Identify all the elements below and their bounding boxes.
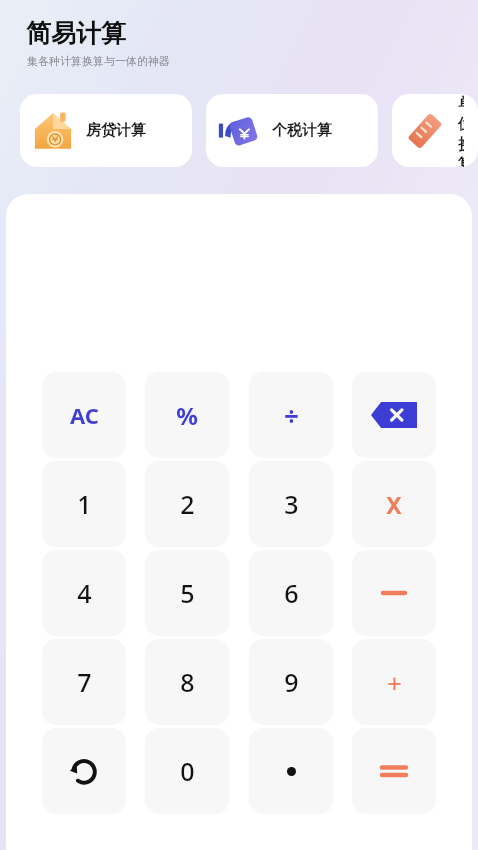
staticText: 单位换算 <box>458 94 464 167</box>
button[interactable]: AC <box>42 372 126 458</box>
button[interactable]: 6 <box>249 550 333 636</box>
staticText: 房贷计算 <box>86 121 146 140</box>
button[interactable]: Decimal point <box>249 728 333 814</box>
button[interactable]: 房贷计算 <box>20 94 192 167</box>
button[interactable]: 1 <box>42 461 126 547</box>
button[interactable]: 单位换算 <box>392 94 478 167</box>
button[interactable]: 个税计算 <box>206 94 378 167</box>
button[interactable]: ÷ <box>249 372 333 458</box>
button[interactable]: 7 <box>42 639 126 725</box>
button[interactable]: X <box>352 461 436 547</box>
staticText: 1 <box>77 487 92 521</box>
staticText: 0 <box>180 754 195 788</box>
staticText: 4 <box>77 576 92 610</box>
button[interactable]: 4 <box>42 550 126 636</box>
button[interactable]: 3 <box>249 461 333 547</box>
staticText: 9 <box>284 665 299 699</box>
staticText: % <box>176 399 198 432</box>
staticText: + <box>387 665 402 700</box>
staticText: AC <box>70 400 99 430</box>
staticText: X <box>386 489 402 520</box>
staticText: 6 <box>284 576 299 610</box>
staticText: 5 <box>180 576 195 610</box>
button[interactable]: 8 <box>145 639 229 725</box>
button[interactable]: 5 <box>145 550 229 636</box>
button[interactable]: Backspace <box>352 372 436 458</box>
staticText: 简易计算 <box>26 18 126 49</box>
staticText: 个税计算 <box>272 121 332 140</box>
button[interactable]: 0 <box>145 728 229 814</box>
staticText: 8 <box>180 665 195 699</box>
button[interactable]: Undo <box>42 728 126 814</box>
button[interactable]: Minus <box>352 550 436 636</box>
staticText: ÷ <box>284 398 299 433</box>
staticText: 集各种计算换算与一体的神器 <box>27 54 170 68</box>
button[interactable]: 9 <box>249 639 333 725</box>
button[interactable]: % <box>145 372 229 458</box>
button[interactable]: Equals <box>352 728 436 814</box>
staticText: 7 <box>77 665 92 699</box>
button[interactable]: 2 <box>145 461 229 547</box>
staticText: 3 <box>284 487 299 521</box>
staticText: 2 <box>180 487 195 521</box>
button[interactable]: + <box>352 639 436 725</box>
